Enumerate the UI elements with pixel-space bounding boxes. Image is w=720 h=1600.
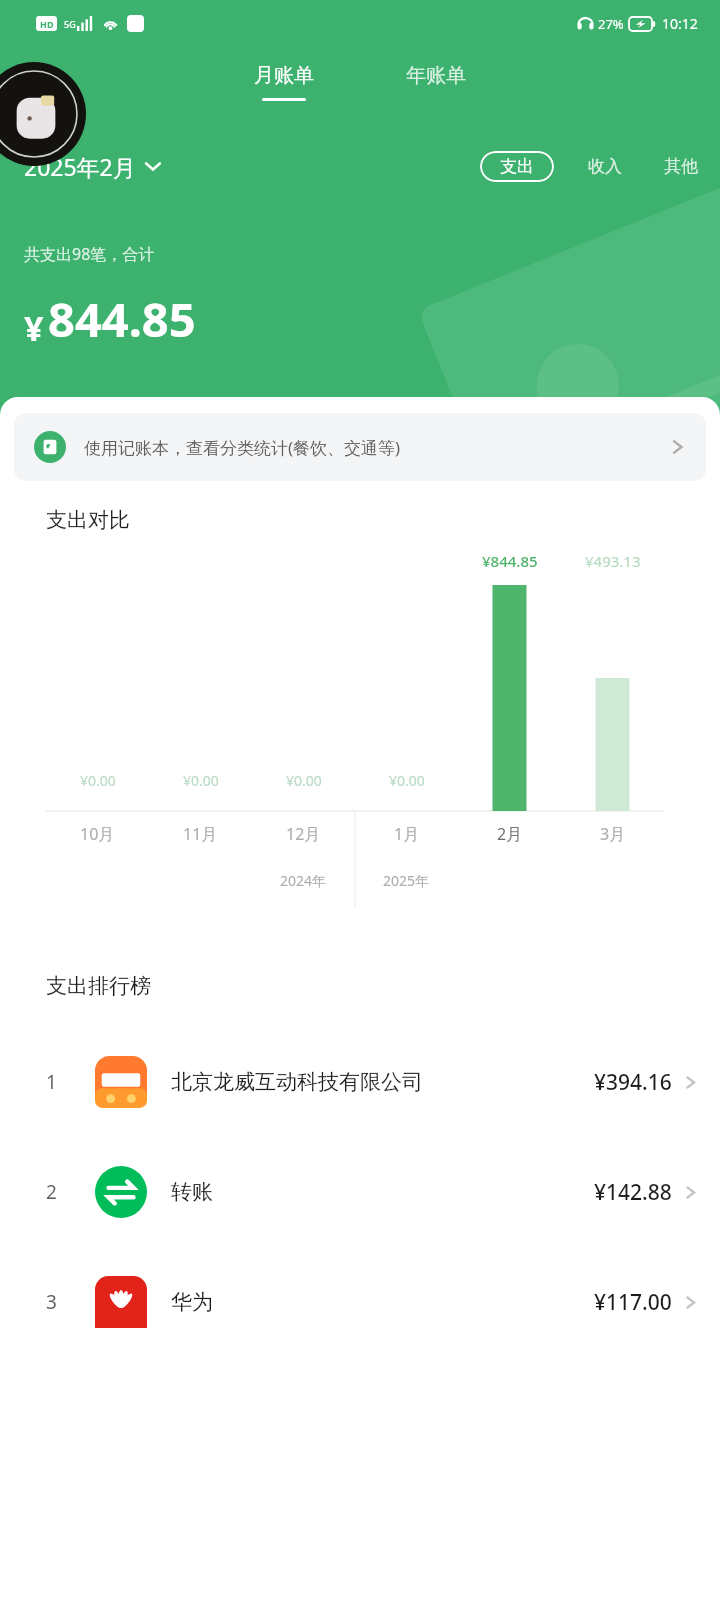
button[interactable]: 3 xyxy=(0,1247,720,1357)
staticText: 11月 xyxy=(183,823,218,845)
staticText: 年账单 xyxy=(406,63,466,88)
staticText: 10:12 xyxy=(662,14,698,33)
staticText: ¥0.00 xyxy=(286,771,322,790)
staticText: 27% xyxy=(598,15,624,33)
button[interactable]: 支出 xyxy=(480,151,554,182)
staticText: 2025年2月 xyxy=(24,151,136,182)
button[interactable]: 其他 xyxy=(664,150,698,183)
staticText: 844.85 xyxy=(48,287,196,351)
staticText: ¥844.85 xyxy=(482,551,538,571)
staticText: ¥0.00 xyxy=(389,771,425,790)
staticText: 10月 xyxy=(80,823,115,845)
staticText: HD xyxy=(40,18,54,30)
button[interactable]: 月账单 xyxy=(232,63,336,101)
staticText: 支出对比 xyxy=(46,507,130,533)
staticText: 12月 xyxy=(286,823,321,845)
staticText: 支出 xyxy=(500,156,534,177)
staticText: ¥0.00 xyxy=(80,771,116,790)
staticText: ¥ xyxy=(24,305,44,351)
staticText: ¥493.13 xyxy=(585,551,641,571)
button[interactable]: 使用记账本，查看分类统计(餐饮、交通等) xyxy=(14,413,706,481)
staticText: 其他 xyxy=(664,156,698,177)
staticText: 支出排行榜 xyxy=(46,973,151,999)
staticText: 5G xyxy=(64,18,76,30)
staticText: ¥394.16 xyxy=(594,1068,672,1097)
staticText: 2024年 xyxy=(280,871,327,890)
staticText: 1月 xyxy=(394,823,420,845)
staticText: ¥117.00 xyxy=(594,1288,672,1317)
staticText: ¥142.88 xyxy=(594,1178,672,1207)
staticText: 3 xyxy=(46,1289,57,1315)
staticText: 北京龙威互动科技有限公司 xyxy=(171,1069,423,1095)
staticText: 1 xyxy=(46,1069,57,1095)
staticText: 转账 xyxy=(171,1179,213,1205)
staticText: 使用记账本，查看分类统计(餐饮、交通等) xyxy=(84,436,401,459)
staticText: 华为 xyxy=(171,1289,213,1315)
button[interactable]: 2 xyxy=(0,1137,720,1247)
button[interactable]: Assistant xyxy=(0,62,86,166)
staticText: ¥0.00 xyxy=(183,771,219,790)
button[interactable]: 2025年2月 xyxy=(24,151,162,182)
staticText: 3月 xyxy=(600,823,626,845)
button[interactable]: 1 xyxy=(0,1027,720,1137)
staticText: 2月 xyxy=(497,823,523,845)
staticText: 共支出98笔，合计 xyxy=(24,243,155,265)
other: Select month xyxy=(144,161,162,172)
button[interactable]: 年账单 xyxy=(384,63,488,101)
staticText: 2025年 xyxy=(383,871,430,890)
staticText: 收入 xyxy=(588,156,622,177)
staticText: 2 xyxy=(46,1179,57,1205)
staticText: 月账单 xyxy=(254,63,314,88)
button[interactable]: 收入 xyxy=(588,150,622,183)
